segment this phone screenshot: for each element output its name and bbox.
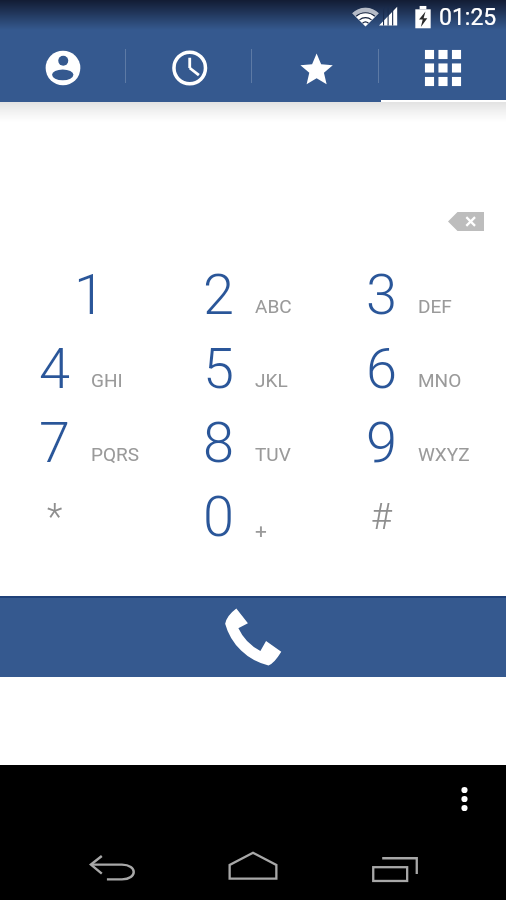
button[interactable]: Call — [0, 596, 506, 677]
staticText: 8 — [203, 410, 235, 476]
staticText: 9 — [366, 410, 398, 476]
button[interactable]: 9 — [335, 403, 498, 477]
staticText: 7 — [39, 410, 71, 476]
staticText: * — [47, 496, 63, 538]
button[interactable]: Backspace — [448, 212, 484, 231]
button[interactable]: Favorites — [252, 30, 379, 102]
staticText: ABC — [255, 295, 292, 317]
staticText: 2 — [203, 262, 235, 328]
staticText: 4 — [39, 336, 71, 402]
staticText: TUV — [255, 443, 291, 465]
button[interactable]: Recents — [126, 30, 252, 102]
staticText: 01:25 — [439, 4, 497, 31]
staticText: GHI — [91, 369, 123, 391]
button[interactable]: 2 — [172, 255, 335, 329]
staticText: MNO — [418, 369, 462, 391]
button[interactable]: Home — [219, 840, 287, 890]
staticText: 6 — [366, 336, 398, 402]
button[interactable]: 0 — [172, 477, 335, 551]
button[interactable]: Keypad — [379, 30, 506, 102]
staticText: PQRS — [91, 443, 140, 465]
button[interactable]: 7 — [8, 403, 172, 477]
button[interactable]: # — [335, 477, 498, 551]
button[interactable]: Contacts — [0, 30, 126, 102]
button[interactable]: Recent apps — [361, 840, 429, 890]
staticText: 3 — [366, 262, 398, 328]
button[interactable]: 8 — [172, 403, 335, 477]
staticText: JKL — [255, 369, 288, 391]
staticText: DEF — [418, 295, 452, 317]
button[interactable]: Back — [79, 840, 147, 890]
staticText: WXYZ — [418, 443, 470, 465]
button[interactable]: * — [8, 477, 172, 551]
button[interactable]: 4 — [8, 329, 172, 403]
button[interactable]: 1 — [8, 255, 172, 329]
staticText: 1 — [74, 262, 106, 328]
button[interactable]: 6 — [335, 329, 498, 403]
button[interactable]: 5 — [172, 329, 335, 403]
staticText: 0 — [203, 484, 235, 550]
button[interactable]: More options — [452, 779, 476, 819]
staticText: + — [255, 519, 267, 544]
button[interactable]: 3 — [335, 255, 498, 329]
staticText: # — [371, 496, 392, 538]
staticText: 5 — [203, 336, 235, 402]
